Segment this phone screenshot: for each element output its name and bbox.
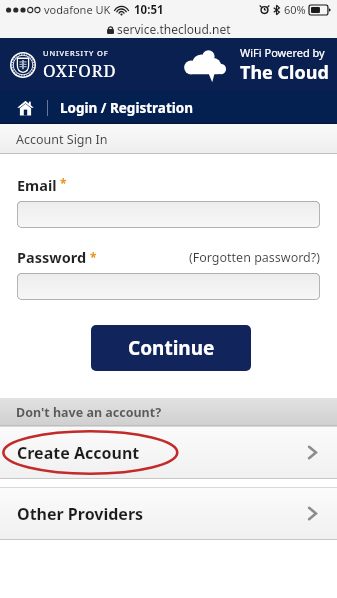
button[interactable] bbox=[17, 201, 320, 228]
staticText: 10:51 bbox=[134, 2, 164, 18]
staticText: Account Sign In bbox=[16, 131, 108, 148]
staticText: * bbox=[90, 249, 97, 265]
staticText: * bbox=[60, 175, 67, 191]
staticText: 60% bbox=[284, 2, 306, 17]
staticText: Don't have an account? bbox=[16, 404, 162, 421]
button[interactable]: (Forgotten password?) bbox=[189, 249, 320, 266]
staticText: Continue bbox=[128, 335, 215, 361]
staticText: The Cloud bbox=[240, 60, 329, 85]
staticText: WiFi Powered by bbox=[240, 45, 325, 60]
staticText: OXFORD bbox=[43, 59, 117, 82]
staticText: Email bbox=[17, 175, 57, 195]
button[interactable]: Login / Registration bbox=[60, 99, 194, 117]
staticText: Other Providers bbox=[17, 503, 144, 525]
button[interactable] bbox=[17, 273, 320, 300]
staticText: Create Account bbox=[17, 442, 140, 464]
staticText: UNIVERSITY OF bbox=[43, 48, 109, 58]
staticText: Password bbox=[17, 247, 87, 267]
staticText: service.thecloud.net bbox=[117, 21, 231, 37]
staticText: Login / Registration bbox=[60, 99, 194, 117]
button[interactable]: Continue bbox=[91, 325, 251, 371]
button[interactable]: Create Account bbox=[0, 426, 337, 479]
staticText: (Forgotten password?) bbox=[189, 249, 320, 266]
button[interactable]: Home bbox=[13, 96, 37, 120]
staticText: vodafone UK bbox=[44, 2, 111, 17]
button[interactable]: Other Providers bbox=[0, 487, 337, 540]
